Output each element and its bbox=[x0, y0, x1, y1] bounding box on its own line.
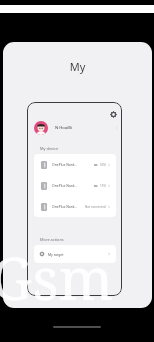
button[interactable]: N HoaiBi bbox=[34, 121, 118, 135]
button[interactable]: OnePlus Nord... bbox=[34, 175, 116, 196]
staticText: My target bbox=[48, 252, 64, 257]
staticText: 50% bbox=[100, 163, 106, 167]
staticText: OnePlus Nord... bbox=[52, 162, 77, 167]
button[interactable]: Settings bbox=[109, 110, 118, 119]
staticText: Gsm bbox=[0, 238, 114, 317]
staticText: OnePlus Nord... bbox=[52, 204, 77, 209]
staticText: Not connected bbox=[85, 205, 106, 209]
staticText: 15% bbox=[100, 184, 106, 188]
button[interactable]: OnePlus Nord... bbox=[34, 196, 116, 217]
staticText: N HoaiBi bbox=[55, 125, 73, 131]
staticText: More actions bbox=[40, 237, 64, 242]
staticText: My bbox=[3, 59, 152, 74]
staticText: My device bbox=[40, 146, 59, 151]
staticText: OnePlus Nord... bbox=[52, 183, 77, 188]
button[interactable]: OnePlus Nord... bbox=[34, 154, 116, 175]
button[interactable]: My target bbox=[34, 245, 116, 263]
